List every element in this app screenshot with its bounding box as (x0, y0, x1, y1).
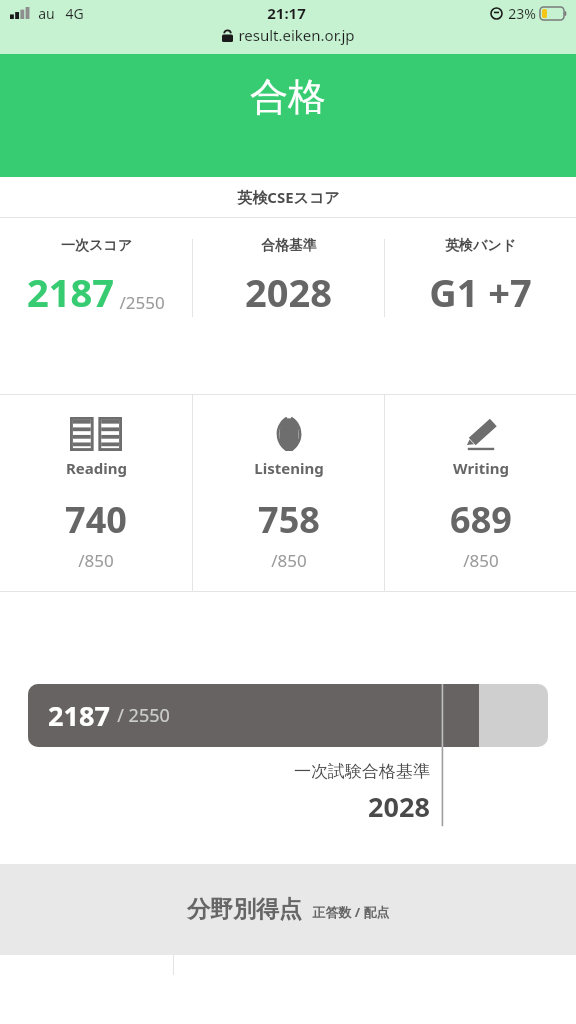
staticText: Listening (254, 458, 324, 478)
staticText: au (38, 4, 55, 23)
staticText: 740 (65, 495, 127, 544)
staticText: Reading (66, 458, 127, 478)
staticText: G1 +7 (429, 266, 532, 318)
staticText: 分野別得点 (187, 895, 302, 924)
staticText: /850 (463, 549, 499, 572)
button[interactable]: Listening (193, 395, 384, 591)
staticText: /850 (78, 549, 114, 572)
staticText: /2550 (119, 291, 165, 314)
staticText: 一次試験合格基準 (294, 761, 430, 782)
staticText: 合格 (250, 73, 326, 121)
staticText: 正答数 / 配点 (312, 903, 390, 921)
button[interactable]: Writing (385, 395, 576, 591)
staticText: 2028 (245, 266, 332, 318)
staticText: result.eiken.or.jp (238, 25, 355, 45)
staticText: 21:17 (267, 3, 306, 23)
staticText: 英検CSEスコア (237, 187, 340, 207)
staticText: 英検バンド (445, 237, 516, 255)
staticText: 一次スコア (61, 237, 132, 255)
staticText: /850 (271, 549, 307, 572)
staticText: 2028 (368, 788, 430, 825)
staticText: 2187 (48, 697, 110, 734)
staticText: 合格基準 (261, 237, 317, 255)
staticText: 23% (508, 4, 536, 23)
staticText: / 2550 (117, 703, 170, 728)
staticText: 689 (450, 495, 512, 544)
staticText: 4G (65, 4, 84, 23)
staticText: 2187 (27, 266, 114, 318)
staticText: 758 (258, 495, 320, 544)
staticText: Writing (453, 458, 509, 478)
button[interactable]: Reading (0, 395, 192, 591)
